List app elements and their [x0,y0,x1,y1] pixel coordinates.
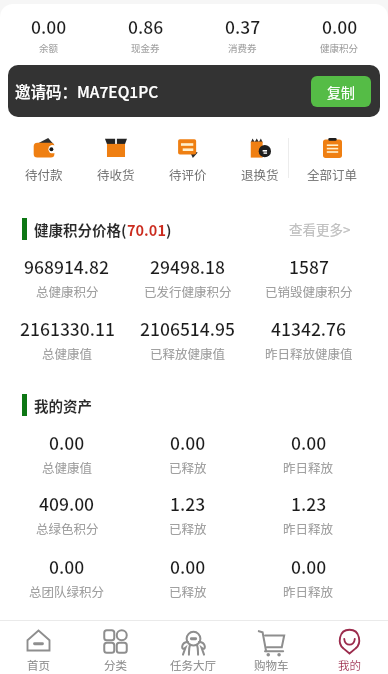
staticText: 已释放 [169,458,207,474]
button[interactable]: 全部订单 [296,132,368,184]
staticText: 余额 [39,41,59,55]
staticText: 分类 [104,657,127,673]
staticText: 现金券 [131,41,160,55]
other: 首页 [26,629,51,654]
button[interactable]: 待评价 [152,132,224,184]
staticText: 0.00 [49,430,85,455]
other: 分类 [103,629,128,654]
staticText: 昨日释放 [283,582,334,598]
staticText: 我的 [338,657,361,673]
staticText: 0.00 [291,430,327,455]
button[interactable]: 购物车 [232,621,310,674]
button[interactable]: 我的 [310,621,388,674]
staticText: 全部订单 [307,165,358,182]
staticText: 2106514.95 [140,316,235,341]
staticText: 0.00 [31,14,67,36]
button[interactable]: 查看更多> [289,219,351,239]
button[interactable]: 任务大厅 [154,621,232,674]
button[interactable]: 首页 [0,621,77,674]
button[interactable]: 复制 [311,76,371,107]
staticText: 0.86 [128,14,164,36]
staticText: 待付款 [25,165,63,182]
staticText: 邀请码：MA7EQ1PC [15,80,159,102]
staticText: 29498.18 [150,254,226,279]
staticText: 0.00 [170,554,206,579]
other: 我的 [337,629,362,654]
staticText: 待评价 [169,165,207,182]
staticText: 健康积分 [320,41,359,55]
staticText: 昨日释放 [283,458,334,474]
button[interactable]: 邀请码：MA7EQ1PC [8,65,380,117]
staticText: 0.00 [291,554,327,579]
staticText: 查看更多> [289,219,351,239]
staticText: 我的资产 [34,395,92,416]
other: 任务大厅 [180,629,207,654]
staticText: 0.00 [322,14,358,36]
staticText: 购物车 [254,657,289,673]
staticText: 已释放 [169,582,207,598]
staticText: 总健康值 [42,344,93,360]
staticText: 968914.82 [24,254,110,279]
other: 购物车 [258,629,285,654]
staticText: 总团队绿积分 [29,582,105,598]
staticText: 已释放健康值 [150,344,226,360]
staticText: 消费券 [228,41,257,55]
staticText: 1.23 [291,491,327,516]
staticText: 待收货 [97,165,135,182]
staticText: 70.01 [127,219,166,240]
staticText: 已销毁健康积分 [265,282,353,298]
button[interactable]: 待付款 [8,132,80,184]
staticText: 1.23 [170,491,206,516]
staticText: 409.00 [39,491,95,516]
button[interactable]: 0.00 [0,14,97,56]
staticText: 2161330.11 [20,316,115,341]
staticText: 0.00 [49,554,85,579]
button[interactable]: 分类 [77,621,154,674]
staticText: 总健康值 [42,458,93,474]
staticText: 复制 [327,82,355,102]
button[interactable]: 0.37 [194,14,291,56]
staticText: 总健康积分 [36,282,99,298]
staticText: 已发行健康积分 [144,282,232,298]
staticText: 41342.76 [271,316,347,341]
staticText: 首页 [27,657,50,673]
staticText: 0.00 [170,430,206,455]
staticText: 1587 [289,254,329,279]
staticText: 任务大厅 [170,657,216,673]
staticText: 健康积分价格( [34,219,127,240]
button[interactable]: 0.00 [291,14,388,56]
staticText: 昨日释放健康值 [265,344,353,360]
button[interactable]: 退换货 [224,132,296,184]
staticText: 0.37 [225,14,261,36]
button[interactable]: 0.86 [97,14,194,56]
staticText: 退换货 [241,165,279,182]
staticText: ) [166,219,172,240]
staticText: 已释放 [169,519,207,535]
staticText: 昨日释放 [283,519,334,535]
button[interactable]: 待收货 [80,132,152,184]
staticText: 总绿色积分 [36,519,99,535]
